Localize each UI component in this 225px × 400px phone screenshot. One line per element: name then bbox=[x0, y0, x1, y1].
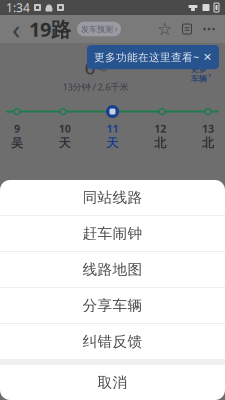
staticText: ‹ bbox=[12, 11, 20, 47]
button[interactable]: 关闭提示 bbox=[203, 51, 212, 63]
button[interactable]: 纠错反馈 bbox=[0, 324, 225, 359]
staticText: 北 bbox=[202, 136, 214, 150]
button[interactable]: 更多 bbox=[198, 16, 220, 42]
staticText: › bbox=[208, 67, 211, 81]
button[interactable]: 取消 bbox=[0, 365, 225, 400]
staticText: 赶车闹钟 bbox=[82, 224, 142, 242]
button[interactable]: 赶车闹钟 bbox=[0, 216, 225, 251]
staticText: 天 bbox=[59, 136, 71, 150]
staticText: 12 bbox=[154, 121, 166, 136]
staticText: 11 bbox=[106, 121, 118, 136]
staticText: 车辆 bbox=[191, 74, 207, 84]
button[interactable]: 分享车辆 bbox=[0, 288, 225, 323]
button[interactable]: 公告 bbox=[176, 16, 198, 42]
staticText: 分享车辆 bbox=[82, 296, 142, 314]
staticText: ✕ bbox=[203, 51, 212, 63]
staticText: 9 bbox=[14, 121, 20, 136]
button[interactable]: 同站线路 bbox=[0, 180, 225, 215]
staticText: ☆ bbox=[157, 19, 173, 39]
staticText: 站 bbox=[97, 61, 106, 73]
staticText: 线路地图 bbox=[82, 260, 142, 278]
button[interactable]: 更多 bbox=[191, 64, 225, 84]
staticText: 取消 bbox=[97, 373, 127, 391]
button[interactable]: 返回 bbox=[5, 16, 27, 42]
staticText: 13 bbox=[202, 121, 214, 136]
button[interactable]: 收藏 bbox=[154, 16, 176, 42]
staticText: 13分钟 / 2.6千米 bbox=[62, 81, 128, 93]
button[interactable]: 发车预测 › bbox=[77, 22, 121, 36]
staticText: 更多功能在这里查看~ bbox=[94, 50, 199, 64]
staticText: 北 bbox=[154, 136, 166, 150]
staticText: 19路 bbox=[29, 16, 71, 42]
staticText: 天 bbox=[106, 136, 118, 150]
staticText: 更多 bbox=[191, 64, 207, 74]
button[interactable]: 线路地图 bbox=[0, 252, 225, 287]
staticText: 同站线路 bbox=[82, 188, 142, 206]
staticText: 发车预测 › bbox=[81, 24, 117, 34]
staticText: 6 bbox=[84, 55, 95, 80]
staticText: 纠错反馈 bbox=[82, 332, 142, 350]
staticText: 1:34 bbox=[6, 0, 30, 15]
staticText: 10 bbox=[59, 121, 71, 136]
staticText: 吴 bbox=[11, 136, 23, 150]
